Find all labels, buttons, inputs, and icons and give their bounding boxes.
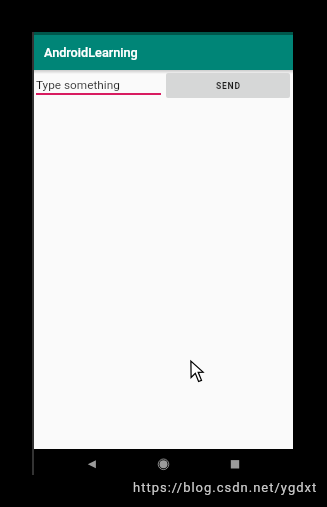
button[interactable]: Type something [36, 70, 161, 95]
button[interactable]: Home [121, 449, 207, 475]
button[interactable]: Recent apps [207, 449, 293, 475]
staticText: SEND [216, 81, 241, 91]
staticText: https://blog.csdn.net/ygdxt [133, 480, 318, 495]
staticText: AndroidLearning [44, 45, 138, 60]
staticText: Type something [36, 78, 120, 92]
button[interactable]: SEND [166, 73, 290, 98]
button[interactable]: Back [34, 449, 121, 475]
